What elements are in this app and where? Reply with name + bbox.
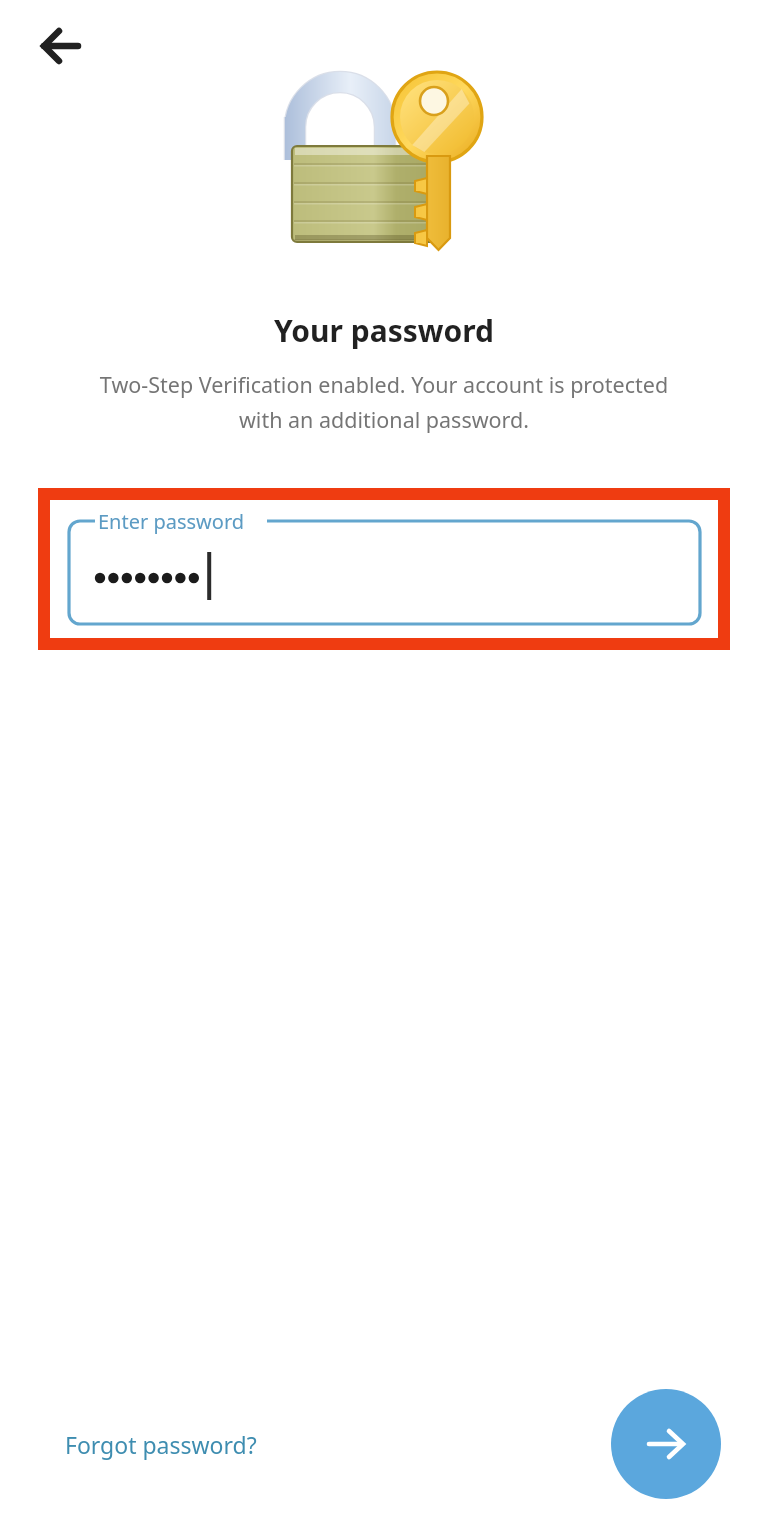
staticText: Enter password (98, 508, 245, 535)
button[interactable]: Back (18, 12, 104, 80)
staticText: Forgot password? (65, 1429, 257, 1460)
button[interactable]: Forgot password? (50, 1410, 318, 1478)
staticText: Your password (274, 310, 494, 351)
button[interactable]: Enter password (38, 488, 730, 650)
staticText: Two-Step Verification enabled. Your acco… (84, 370, 684, 435)
button[interactable]: Continue (611, 1389, 721, 1499)
